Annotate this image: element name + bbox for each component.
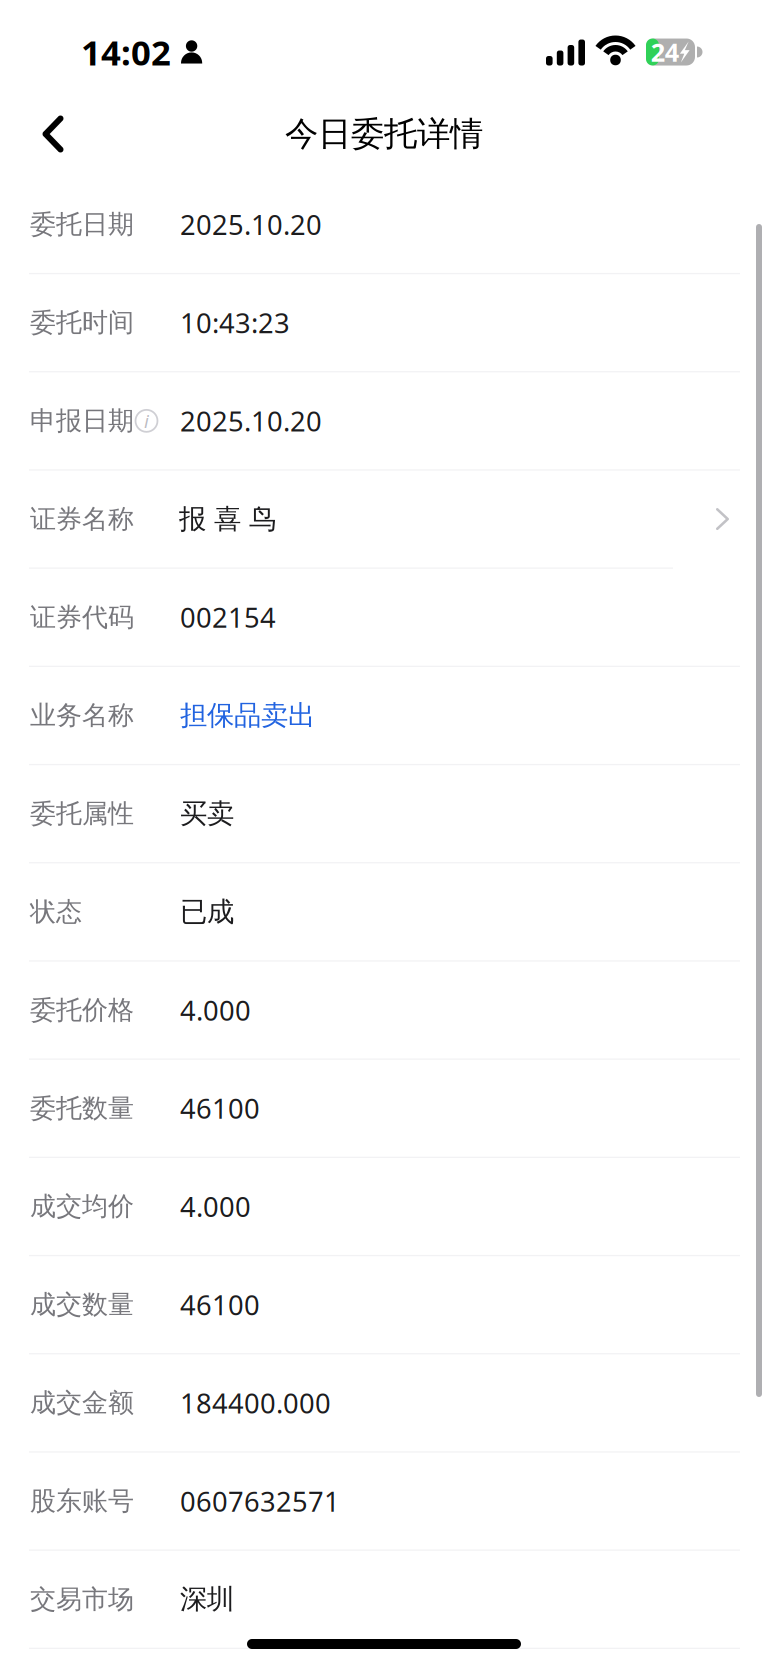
button[interactable]: 成交均价	[0, 1158, 768, 1255]
staticText: 深圳	[180, 1582, 234, 1616]
staticText: 报 喜 鸟	[179, 502, 276, 536]
button[interactable]: 委托价格	[0, 962, 768, 1058]
staticText: 股东账号	[30, 1485, 134, 1517]
staticText: 184400.000	[180, 1384, 331, 1421]
staticText: 成交数量	[30, 1288, 134, 1321]
button[interactable]: 返回	[22, 98, 84, 182]
staticText: 证券名称	[30, 503, 134, 535]
button[interactable]: 成交数量	[0, 1256, 768, 1353]
staticText: 24	[651, 35, 679, 69]
staticText: 委托时间	[30, 306, 134, 339]
staticText: 证券代码	[30, 601, 134, 634]
button[interactable]: 申报日期	[0, 372, 768, 469]
button[interactable]: 证券名称	[0, 471, 768, 567]
staticText: 2025.10.20	[180, 206, 322, 243]
button[interactable]: 状态	[0, 863, 768, 960]
staticText: 成交均价	[30, 1190, 134, 1223]
staticText: 4.000	[180, 991, 251, 1029]
staticText: 46100	[180, 1286, 260, 1323]
staticText: 申报日期	[30, 404, 134, 437]
button[interactable]: 委托属性	[0, 765, 768, 862]
staticText: 已成	[180, 895, 234, 929]
staticText: i	[144, 408, 149, 433]
staticText: 2025.10.20	[180, 402, 322, 439]
staticText: 46100	[180, 1090, 260, 1127]
staticText: 002154	[180, 599, 276, 636]
staticText: 成交金额	[30, 1386, 134, 1419]
staticText: 委托属性	[30, 797, 134, 830]
staticText: 担保品卖出	[180, 698, 315, 733]
staticText: 委托数量	[30, 1092, 134, 1125]
button[interactable]: 委托日期	[0, 176, 768, 273]
button[interactable]: 业务名称	[0, 667, 768, 764]
button[interactable]: 成交金额	[0, 1354, 768, 1451]
staticText: 今日委托详情	[285, 113, 483, 155]
staticText: 买卖	[180, 796, 234, 831]
button[interactable]: 股东账号	[0, 1453, 768, 1549]
staticText: 交易市场	[30, 1583, 134, 1616]
button[interactable]: 交易市场	[0, 1551, 768, 1648]
button[interactable]: 证券代码	[0, 569, 768, 666]
button[interactable]: 委托数量	[0, 1060, 768, 1157]
button[interactable]: 委托时间	[0, 274, 768, 371]
staticText: 业务名称	[30, 699, 134, 732]
staticText: 4.000	[180, 1188, 251, 1225]
staticText: 10:43:23	[180, 304, 290, 341]
staticText: 状态	[30, 895, 82, 928]
staticText: 委托价格	[30, 994, 134, 1026]
staticText: 委托日期	[30, 208, 134, 241]
staticText: 14:02	[81, 28, 171, 76]
staticText: 0607632571	[180, 1482, 340, 1520]
